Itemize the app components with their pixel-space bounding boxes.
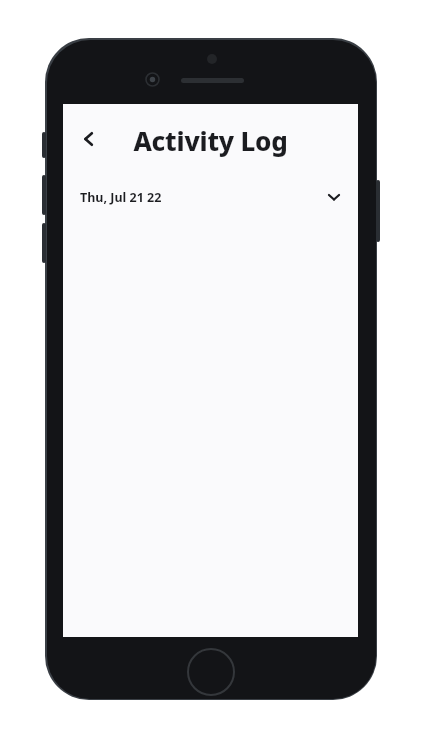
staticText: Activity Log	[133, 123, 288, 158]
button[interactable]: Back	[69, 119, 109, 159]
staticText: Thu, Jul 21 22	[80, 189, 162, 206]
button[interactable]: Thu, Jul 21 22	[63, 174, 358, 220]
